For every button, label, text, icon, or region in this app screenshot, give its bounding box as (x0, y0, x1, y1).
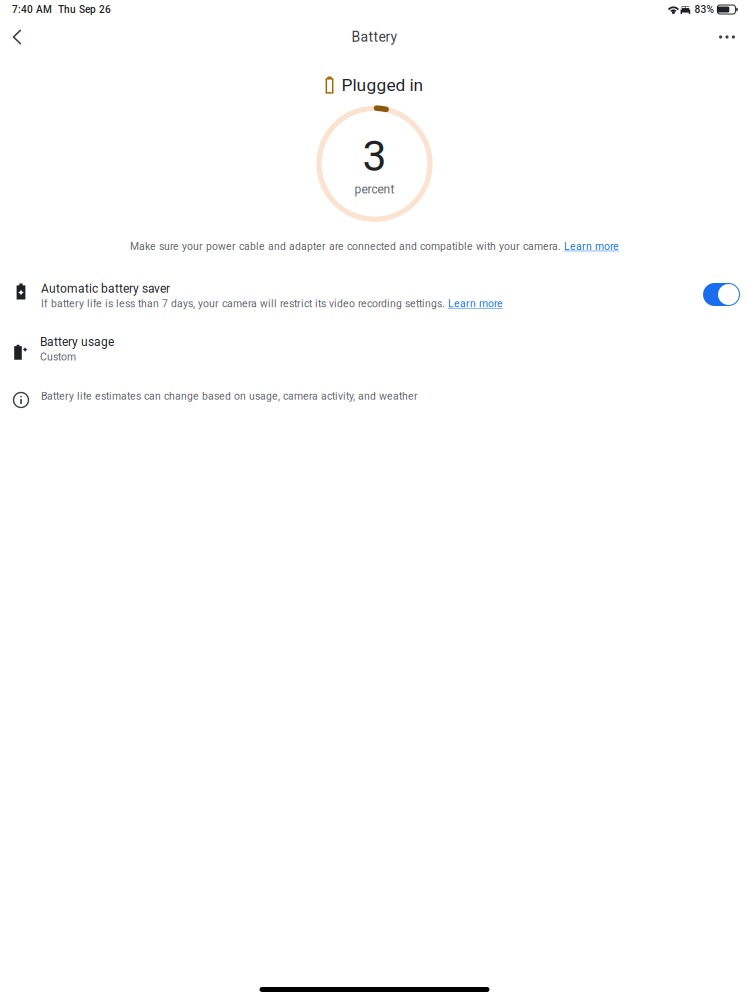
staticText: Make sure your power cable and adapter a… (130, 240, 564, 252)
staticText: percent (354, 182, 394, 196)
staticText: Learn more (564, 240, 619, 252)
staticText: Battery life estimates can change based … (41, 390, 418, 402)
staticText: Automatic battery saver (41, 281, 170, 296)
staticText: Custom (40, 351, 76, 363)
staticText: Battery usage (40, 335, 114, 349)
staticText: If battery life is less than 7 days, you… (41, 298, 448, 310)
staticText: Battery (351, 29, 397, 45)
staticText: 83% (694, 4, 713, 15)
button[interactable]: Learn more (564, 240, 619, 252)
staticText: Thu Sep 26 (58, 4, 111, 15)
staticText: 7:40 AM (12, 4, 52, 15)
button[interactable]: Automatic battery saver (0, 252, 749, 320)
button[interactable]: More options (710, 19, 744, 55)
staticText: Plugged in (341, 75, 423, 95)
button[interactable]: Battery usage (0, 320, 749, 373)
staticText: Learn more (448, 298, 503, 310)
staticText: 3 (362, 131, 386, 181)
button[interactable]: Back (0, 19, 34, 55)
